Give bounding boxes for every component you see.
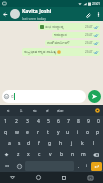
button[interactable]: ಶುಭ ಮಧ್ಯಾಹ್ನ — [38, 23, 100, 30]
staticText: v — [49, 151, 52, 158]
button[interactable]: z — [13, 149, 23, 160]
button[interactable]: । — [83, 161, 91, 171]
button[interactable]: g — [44, 138, 55, 149]
staticText: h — [59, 140, 63, 147]
staticText: 2 — [15, 118, 18, 125]
staticText: n — [71, 151, 75, 158]
button[interactable]: 4 — [33, 116, 43, 127]
staticText: 5 — [47, 118, 50, 125]
staticText: 4 — [37, 118, 40, 125]
button[interactable]: y — [53, 127, 63, 138]
button[interactable]: k — [77, 138, 88, 149]
button[interactable]: j — [66, 138, 77, 149]
staticText: 6 — [57, 118, 60, 125]
button[interactable]: c — [34, 149, 45, 160]
button[interactable]: t — [43, 127, 53, 138]
button[interactable]: d — [24, 138, 34, 149]
button[interactable]: o — [83, 127, 93, 138]
button[interactable]: r — [33, 127, 43, 138]
button[interactable]: 1 — [0, 116, 11, 127]
staticText: r — [37, 129, 40, 136]
staticText: ನ — [7, 109, 10, 113]
button[interactable]: m — [78, 149, 89, 160]
button[interactable]: Shift — [0, 149, 13, 160]
button[interactable]: x — [23, 149, 34, 160]
button[interactable]: ನಮಸ್ಕಾರ — [52, 32, 100, 38]
staticText: x — [27, 151, 30, 158]
button[interactable]: ಸುಪ್ರಭಾತ ಕನ್ನಡ ಸಾಹಿತ್ಯ — [22, 48, 100, 56]
button[interactable]: 9 — [83, 116, 93, 127]
staticText: o — [86, 129, 90, 136]
staticText: l — [93, 140, 95, 147]
button[interactable]: Send — [88, 90, 101, 103]
button[interactable]: . — [75, 161, 83, 171]
button[interactable]: h — [55, 138, 66, 149]
button[interactable]: Attach — [82, 9, 93, 20]
other: Emoji — [4, 94, 9, 99]
staticText: 0 — [97, 118, 100, 125]
staticText: 3 — [26, 118, 29, 125]
button[interactable]: Home — [25, 172, 51, 183]
staticText: ಸುಪ್ರಭಾತ ಕನ್ನಡ ಸಾಹಿತ್ಯ — [24, 49, 56, 55]
staticText: i — [77, 129, 79, 136]
button[interactable]: i — [73, 127, 83, 138]
button[interactable]: 8 — [73, 116, 83, 127]
button[interactable]: Emoji keyboard — [14, 161, 24, 171]
staticText: 1 — [4, 118, 7, 125]
staticText: 8 — [77, 118, 80, 125]
button[interactable]: 7 — [63, 116, 73, 127]
button[interactable]: ನಿ — [15, 105, 28, 116]
staticText: ನಮಸ್ಕಾರ — [54, 33, 67, 37]
staticText: ನಿ — [20, 109, 23, 113]
staticText: g — [48, 140, 52, 147]
button[interactable]: f — [34, 138, 44, 149]
button[interactable]: Back — [0, 9, 10, 19]
button[interactable]: 6 — [53, 116, 63, 127]
button[interactable]: Enter — [91, 162, 102, 171]
button[interactable]: s — [14, 138, 24, 149]
staticText: a — [8, 140, 11, 147]
staticText: 9 — [87, 118, 90, 125]
button[interactable]: u — [63, 127, 73, 138]
button[interactable]: ನೆ — [41, 105, 54, 116]
button[interactable]: e — [22, 127, 33, 138]
staticText: c — [38, 151, 41, 158]
button[interactable]: Keyboard settings — [94, 107, 101, 114]
button[interactable]: l — [88, 138, 99, 149]
button[interactable]: ಗುಡ್‌ಮಾರ್ನಿಂಗ್ — [45, 40, 100, 46]
button[interactable]: ಅಂ — [1, 161, 14, 171]
button[interactable]: Backspace — [89, 149, 103, 160]
button[interactable]: Kavita Joshi — [22, 8, 82, 21]
button[interactable]: 0 — [93, 116, 103, 127]
button[interactable]: Back — [0, 172, 25, 183]
button[interactable]: b — [56, 149, 67, 160]
button[interactable]: Emoji — [2, 90, 86, 103]
button[interactable]: ನ — [2, 105, 15, 116]
button[interactable]: Switch keyboard — [77, 172, 103, 183]
button[interactable]: 2 — [11, 116, 22, 127]
staticText: । — [86, 163, 88, 169]
staticText: 23:47 — [85, 33, 93, 37]
button[interactable]: 5 — [43, 116, 53, 127]
button[interactable]: a — [4, 138, 14, 149]
button[interactable]: p — [93, 127, 103, 138]
staticText: p — [96, 129, 100, 136]
staticText: . — [78, 163, 80, 170]
button[interactable]: More options — [93, 9, 103, 19]
staticText: d — [27, 140, 31, 147]
staticText: ನೆ — [46, 109, 49, 113]
button[interactable]: ನೋ — [54, 105, 67, 116]
button[interactable]: Recents — [51, 172, 77, 183]
button[interactable]: w — [11, 127, 22, 138]
button[interactable]: v — [45, 149, 56, 160]
staticText: b — [60, 151, 64, 158]
staticText: u — [66, 129, 70, 136]
staticText: m — [81, 151, 86, 158]
staticText: ನ — [11, 94, 14, 99]
button[interactable]: ನು — [28, 105, 41, 116]
button[interactable]: q — [0, 127, 11, 138]
button[interactable]: n — [67, 149, 78, 160]
staticText: w — [15, 129, 19, 136]
button[interactable]: 3 — [22, 116, 33, 127]
